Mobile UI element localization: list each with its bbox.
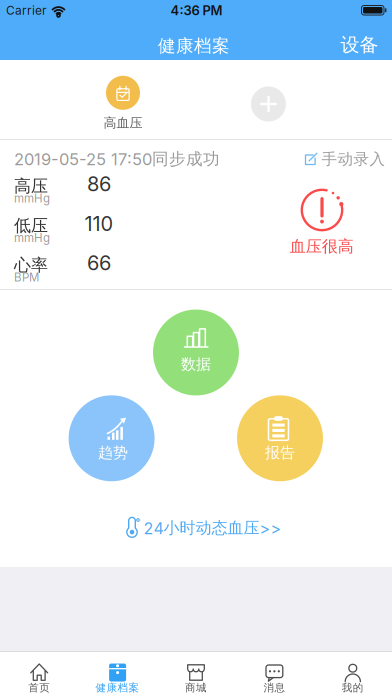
staticText: 趋势 [98, 443, 128, 462]
staticText: 健康档案 [96, 681, 140, 694]
staticText: 数据 [181, 355, 211, 374]
staticText: mmHg [14, 231, 50, 245]
button[interactable]: 商城 [157, 652, 235, 696]
staticText: 商城 [185, 681, 207, 694]
staticText: 设备 [340, 33, 378, 57]
staticText: 低压 [14, 215, 48, 236]
staticText: 首页 [28, 681, 50, 694]
button[interactable]: 我的 [314, 652, 392, 696]
staticText: 110 [84, 212, 113, 236]
button[interactable]: 设备 [332, 27, 386, 63]
staticText: 24小时动态血压>> [143, 518, 281, 538]
button[interactable]: 添加成员 [251, 86, 286, 121]
button[interactable]: 高血压 [103, 76, 142, 131]
staticText: 66 [87, 251, 111, 275]
staticText: 高血压 [103, 115, 142, 131]
button[interactable]: 24小时动态血压>> [124, 517, 281, 538]
staticText: 4:36 PM [170, 3, 222, 18]
staticText: 86 [87, 172, 111, 196]
staticText: 心率 [14, 254, 48, 276]
button[interactable]: 数据 [153, 309, 239, 395]
staticText: 2019-05-25 17:50同步成功 [14, 149, 220, 169]
staticText: BPM [14, 270, 39, 284]
button[interactable]: 首页 [0, 652, 78, 696]
staticText: mmHg [14, 191, 50, 205]
staticText: 血压很高 [290, 236, 354, 257]
button[interactable]: 报告 [237, 395, 323, 481]
staticText: 高压 [14, 175, 48, 197]
button[interactable]: 消息 [235, 652, 314, 696]
staticText: Carrier [6, 3, 47, 18]
staticText: 手动录入 [321, 149, 385, 169]
staticText: 健康档案 [158, 35, 230, 57]
staticText: 报告 [265, 443, 295, 462]
button[interactable]: 手动录入 [304, 149, 385, 169]
staticText: 消息 [263, 681, 285, 694]
button[interactable]: 健康档案 [78, 652, 157, 696]
staticText: 我的 [342, 681, 364, 694]
button[interactable]: 趋势 [69, 395, 155, 481]
